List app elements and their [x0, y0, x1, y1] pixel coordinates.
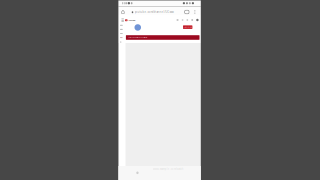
staticText: SUBSCRIBE	[183, 26, 192, 28]
button[interactable]: Menu	[121, 19, 124, 22]
staticText: youtube.com/channel/UCxxxx	[134, 10, 173, 14]
button[interactable]: Upload	[191, 19, 193, 21]
button[interactable]: Tabs	[185, 10, 189, 14]
button[interactable]: Address bar	[132, 10, 173, 14]
button[interactable]: Notifications	[186, 19, 188, 21]
button[interactable]: Account	[196, 19, 199, 21]
staticText: This channel is not available.	[128, 36, 147, 39]
button[interactable]: Search	[176, 19, 179, 21]
staticText: YouTube	[128, 19, 135, 22]
button[interactable]: Subscribe	[183, 25, 192, 29]
button[interactable]: YouTube home	[125, 19, 135, 22]
button[interactable]: Home	[122, 10, 124, 13]
staticText: www.example.com/watch	[153, 167, 184, 171]
button[interactable]: More options	[194, 10, 196, 14]
